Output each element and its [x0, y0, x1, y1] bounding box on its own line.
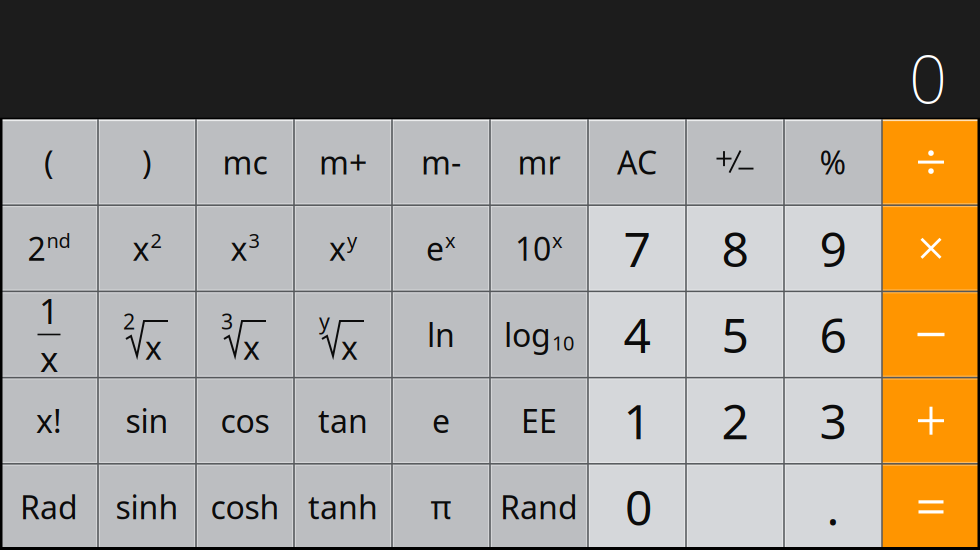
button[interactable]: x squared — [98, 205, 196, 291]
staticText: π — [430, 486, 451, 528]
staticText: 6 — [819, 303, 846, 366]
button[interactable]: Factorial — [0, 378, 98, 464]
button[interactable]: e to the x — [392, 205, 490, 291]
staticText: e — [426, 227, 444, 270]
button[interactable]: Cube root — [196, 291, 294, 378]
button[interactable]: 8 — [686, 205, 784, 291]
button[interactable]: Exponent — [490, 378, 588, 464]
button[interactable]: Plus minus — [686, 119, 784, 205]
button[interactable]: Euler's number — [392, 378, 490, 464]
staticText: nd — [46, 227, 70, 253]
staticText: y — [347, 227, 357, 253]
staticText: x — [445, 227, 456, 253]
button[interactable]: 3 — [784, 378, 882, 464]
staticText: 2 — [150, 227, 161, 253]
button[interactable]: Divide — [882, 119, 980, 205]
button[interactable]: Memory clear — [196, 119, 294, 205]
button[interactable]: 7 — [588, 205, 686, 291]
staticText: sin — [125, 399, 168, 442]
button[interactable]: Second functions — [0, 205, 98, 291]
staticText: tanh — [308, 486, 378, 528]
staticText: 4 — [623, 303, 650, 366]
button[interactable]: Log base 10 — [490, 291, 588, 378]
button[interactable]: Memory add — [294, 119, 392, 205]
staticText: mc — [222, 141, 267, 183]
button[interactable]: Hyperbolic cosine — [196, 464, 294, 550]
button[interactable]: All clear — [588, 119, 686, 205]
staticText: 1 — [39, 287, 59, 333]
staticText: Rand — [500, 486, 578, 528]
button[interactable]: Memory subtract — [392, 119, 490, 205]
staticText: Rad — [20, 486, 78, 528]
staticText: tan — [318, 399, 368, 442]
button[interactable]: Hyperbolic sine — [98, 464, 196, 550]
button[interactable]: 0 — [588, 464, 784, 550]
staticText: x — [341, 326, 358, 368]
staticText: x — [230, 227, 247, 270]
button[interactable]: 2 — [686, 378, 784, 464]
button[interactable]: x to the power y — [294, 205, 392, 291]
staticText: sinh — [115, 486, 178, 528]
staticText: 2 — [721, 389, 748, 452]
button[interactable]: 5 — [686, 291, 784, 378]
staticText: 3 — [819, 389, 846, 452]
staticText: ( — [44, 141, 54, 183]
staticText: log — [504, 313, 551, 356]
staticText: 3 — [221, 307, 233, 335]
button[interactable]: Natural log — [392, 291, 490, 378]
button[interactable]: Multiply — [882, 205, 980, 291]
button[interactable]: Sine — [98, 378, 196, 464]
button[interactable]: x cubed — [196, 205, 294, 291]
staticText: 5 — [721, 303, 748, 366]
staticText: ln — [427, 313, 455, 356]
staticText: 0 — [909, 33, 947, 122]
staticText: x — [329, 227, 346, 270]
button[interactable]: Minus — [882, 291, 980, 378]
staticText: x — [552, 227, 563, 253]
staticText: y — [319, 307, 330, 335]
button[interactable]: Tangent — [294, 378, 392, 464]
button[interactable]: Equals — [882, 464, 980, 550]
button[interactable]: y root of x — [294, 291, 392, 378]
button[interactable]: 1 — [588, 378, 686, 464]
staticText: 10 — [552, 329, 574, 356]
button[interactable]: Pi — [392, 464, 490, 550]
button[interactable]: 4 — [588, 291, 686, 378]
button[interactable]: Percent — [784, 119, 882, 205]
staticText: x — [40, 335, 58, 381]
staticText: e — [432, 399, 450, 442]
staticText: cosh — [210, 486, 279, 528]
staticText: ) — [142, 141, 152, 183]
button[interactable]: 9 — [784, 205, 882, 291]
staticText: 7 — [623, 216, 650, 280]
staticText: AC — [617, 141, 657, 183]
staticText: 3 — [248, 227, 259, 253]
button[interactable]: Random — [490, 464, 588, 550]
staticText: x — [243, 326, 260, 368]
button[interactable]: Decimal point — [784, 464, 882, 550]
staticText: 8 — [721, 216, 748, 280]
staticText: cos — [220, 399, 269, 442]
button[interactable]: 10 to the x — [490, 205, 588, 291]
button[interactable]: Radians — [0, 464, 98, 550]
staticText: . — [826, 475, 839, 539]
staticText: 10 — [515, 227, 551, 270]
staticText: mr — [517, 141, 560, 183]
staticText: x! — [36, 399, 62, 442]
staticText: % — [819, 141, 846, 183]
staticText: x — [132, 227, 149, 270]
button[interactable]: Square root — [98, 291, 196, 378]
staticText: m- — [421, 141, 461, 183]
button[interactable]: Open parenthesis — [0, 119, 98, 205]
staticText: x — [145, 326, 162, 368]
button[interactable]: Cosine — [196, 378, 294, 464]
button[interactable]: Plus — [882, 378, 980, 464]
button[interactable]: Memory recall — [490, 119, 588, 205]
staticText: 9 — [819, 216, 846, 280]
button[interactable]: One over x — [0, 291, 98, 378]
staticText: 2 — [27, 227, 45, 270]
staticText: 2 — [123, 307, 135, 335]
button[interactable]: 6 — [784, 291, 882, 378]
button[interactable]: Close parenthesis — [98, 119, 196, 205]
button[interactable]: Hyperbolic tangent — [294, 464, 392, 550]
